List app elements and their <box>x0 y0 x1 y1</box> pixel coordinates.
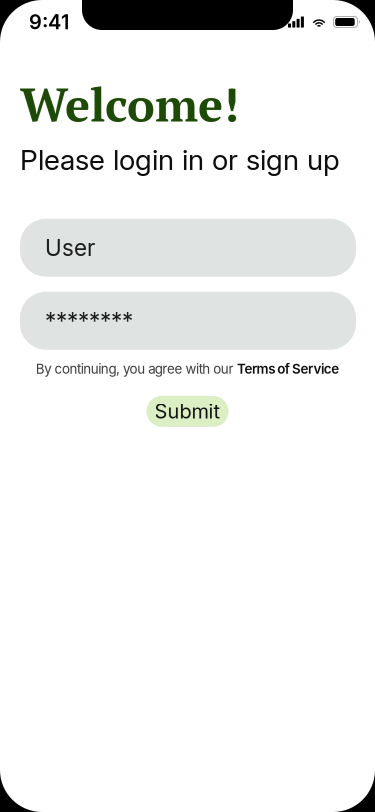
button[interactable]: Username field <box>20 219 356 277</box>
staticText: Terms of Service <box>237 361 339 377</box>
button[interactable]: Terms of Service <box>237 361 339 377</box>
staticText: ******** <box>45 307 133 334</box>
staticText: By continuing, you agree with our <box>36 361 237 377</box>
button[interactable]: Submit <box>146 396 228 427</box>
button[interactable]: Password field <box>20 292 356 350</box>
staticText: Submit <box>154 399 220 423</box>
staticText: Welcome! <box>20 73 239 135</box>
staticText: User <box>45 234 95 261</box>
staticText: 9:41 <box>29 10 69 34</box>
staticText: Please login in or sign up <box>20 143 340 177</box>
